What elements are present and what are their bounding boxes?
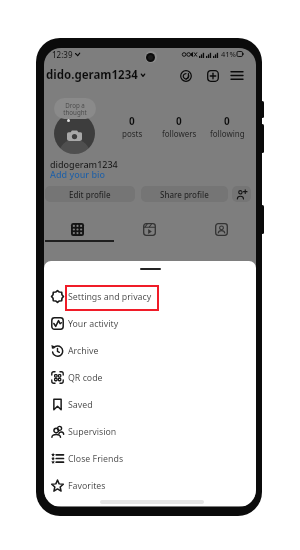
button[interactable]: Settings and privacy	[44, 283, 256, 310]
staticText: Settings and privacy	[68, 291, 152, 303]
staticText: 0	[224, 114, 230, 128]
staticText: 0	[176, 114, 182, 128]
button[interactable]: Discover people	[232, 186, 251, 202]
button[interactable]: 0	[203, 114, 251, 139]
button[interactable]: Favorites	[44, 472, 256, 499]
staticText: Saved	[68, 399, 93, 411]
staticText: following	[210, 128, 245, 139]
button[interactable]: QR code	[44, 364, 256, 391]
button[interactable]: Edit profile	[45, 186, 135, 202]
staticText: posts	[122, 128, 143, 139]
staticText: Archive	[68, 345, 99, 357]
button[interactable]: Your activity	[44, 310, 256, 337]
staticText: Supervision	[68, 426, 117, 438]
staticText: Favorites	[68, 480, 106, 492]
button[interactable]: Share profile	[141, 186, 228, 202]
staticText: dido.geram1234	[46, 67, 138, 83]
staticText: Drop a thought	[63, 101, 87, 117]
button[interactable]: 0	[155, 114, 203, 139]
staticText: QR code	[68, 372, 103, 384]
button[interactable]: Close Friends	[44, 445, 256, 472]
button[interactable]: Reels	[138, 220, 160, 238]
button[interactable]: Drop a thought	[54, 98, 96, 119]
button[interactable]: Create new post	[204, 67, 221, 84]
staticText: Edit profile	[69, 189, 111, 200]
staticText: 41%	[221, 49, 236, 59]
button[interactable]: 0	[108, 114, 156, 139]
button[interactable]: Open menu	[228, 67, 245, 84]
button[interactable]: Threads	[177, 67, 194, 84]
staticText: followers	[162, 128, 197, 139]
button[interactable]: dido.geram1234	[45, 66, 145, 83]
staticText: 12:39	[52, 49, 73, 59]
button[interactable]: Posts	[66, 220, 88, 238]
button[interactable]: Saved	[44, 391, 256, 418]
staticText: Close Friends	[68, 453, 124, 465]
staticText: didogeram1234	[50, 158, 118, 170]
button[interactable]: Add your bio	[50, 168, 105, 180]
staticText: 0	[129, 114, 135, 128]
button[interactable]: Supervision	[44, 418, 256, 445]
button[interactable]: Archive	[44, 337, 256, 364]
button[interactable]: Profile photo	[54, 113, 95, 154]
staticText: Share profile	[160, 189, 209, 200]
button[interactable]: Tagged	[210, 220, 232, 238]
staticText: Your activity	[68, 318, 119, 330]
